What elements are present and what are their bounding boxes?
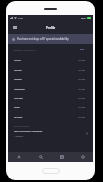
- button[interactable]: Monday: [8, 66, 93, 75]
- button[interactable]: Saturday: [8, 113, 93, 122]
- staticText: Edit: [80, 48, 85, 51]
- staticText: Sunday: [14, 59, 21, 62]
- button[interactable]: Wednesday: [8, 85, 93, 94]
- staticText: Days Off/Special Availability: [14, 130, 43, 133]
- button[interactable]: Profile: [8, 152, 30, 162]
- staticText: All Day: [78, 59, 86, 62]
- button[interactable]: Tuesday: [8, 75, 93, 84]
- button[interactable]: Search: [30, 152, 51, 162]
- button[interactable]: Friday: [8, 103, 93, 112]
- button[interactable]: Menu: [8, 21, 22, 34]
- staticText: All Day: [78, 69, 86, 72]
- staticText: All Day: [78, 88, 86, 91]
- button[interactable]: Edit: [79, 46, 86, 53]
- button[interactable]: Days Off/Special Availability: [8, 127, 93, 140]
- staticText: Profile: [46, 26, 56, 30]
- button[interactable]: Sunday: [8, 56, 93, 65]
- staticText: Friday: [14, 106, 20, 109]
- button[interactable]: Schedule: [51, 152, 72, 162]
- staticText: GENERAL AVAILABILITY: [14, 49, 37, 51]
- staticText: Wednesday: [14, 88, 25, 91]
- staticText: Thursday: [14, 97, 23, 100]
- staticText: All Day: [78, 97, 86, 100]
- staticText: Saturday: [14, 116, 23, 119]
- staticText: All Day: [78, 106, 86, 109]
- staticText: You have set days off / special availabi…: [17, 37, 69, 41]
- button[interactable]: Thursday: [8, 94, 93, 103]
- staticText: All Day: [78, 116, 86, 119]
- staticText: All Day: [78, 78, 86, 81]
- staticText: 1:15: [18, 17, 23, 20]
- staticText: Monday: [14, 69, 22, 72]
- staticText: 50%: [81, 17, 86, 20]
- staticText: 1 request: [14, 135, 24, 138]
- staticText: Tuesday: [14, 78, 22, 81]
- button[interactable]: More: [72, 152, 93, 162]
- staticText: OTHER OPTIONS: [14, 125, 30, 127]
